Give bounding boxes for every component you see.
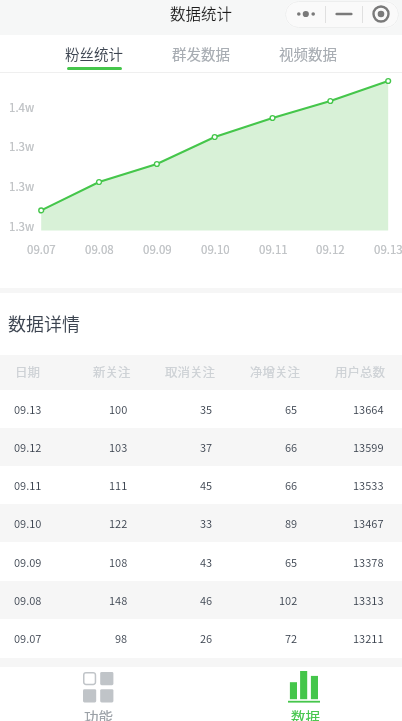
staticText: 09.11 (259, 241, 288, 258)
button[interactable]: More options (285, 1, 325, 28)
staticText: 33 (200, 515, 213, 531)
button[interactable]: Minimize (326, 1, 362, 28)
button[interactable]: 数据 (204, 667, 402, 721)
staticText: 100 (109, 401, 128, 417)
staticText: 09.08 (14, 592, 42, 608)
staticText: 新关注 (93, 362, 131, 380)
staticText: 66 (285, 477, 298, 493)
staticText: 89 (285, 515, 298, 531)
staticText: 122 (109, 515, 128, 531)
staticText: 13313 (353, 592, 384, 608)
staticText: 粉丝统计 (65, 43, 123, 64)
button[interactable]: 群发数据 (147, 35, 254, 73)
staticText: 09.07 (27, 241, 56, 258)
staticText: 净增关注 (250, 362, 301, 380)
staticText: 65 (285, 401, 298, 417)
staticText: 09.12 (316, 241, 345, 258)
staticText: 数据 (291, 706, 320, 721)
staticText: 103 (109, 439, 128, 455)
staticText: 取消关注 (165, 362, 216, 380)
button[interactable]: 粉丝统计 (41, 35, 147, 73)
staticText: 65 (285, 554, 298, 570)
staticText: 98 (115, 630, 128, 646)
staticText: 1.3w (9, 178, 35, 195)
staticText: 13467 (353, 515, 384, 531)
staticText: 视频数据 (279, 43, 337, 64)
staticText: 日期 (15, 362, 41, 380)
button[interactable]: Close (363, 1, 399, 28)
staticText: 13378 (353, 554, 384, 570)
staticText: 1.3w (9, 218, 35, 235)
staticText: 09.07 (14, 630, 42, 646)
staticText: 功能 (84, 706, 113, 721)
staticText: 102 (279, 592, 298, 608)
staticText: 13211 (353, 630, 384, 646)
staticText: 26 (200, 630, 213, 646)
staticText: 群发数据 (172, 43, 230, 64)
staticText: 108 (109, 554, 128, 570)
staticText: 66 (285, 439, 298, 455)
staticText: 用户总数 (335, 362, 386, 380)
staticText: 数据详情 (8, 310, 80, 336)
staticText: 09.09 (14, 554, 42, 570)
staticText: 45 (200, 477, 213, 493)
staticText: 111 (109, 477, 128, 493)
staticText: 09.13 (374, 241, 402, 258)
staticText: 13664 (353, 401, 384, 417)
staticText: 46 (200, 592, 213, 608)
staticText: 09.10 (14, 515, 42, 531)
staticText: 09.12 (14, 439, 42, 455)
staticText: 72 (285, 630, 298, 646)
staticText: 09.10 (201, 241, 230, 258)
staticText: 37 (200, 439, 213, 455)
staticText: 35 (200, 401, 213, 417)
staticText: 09.09 (143, 241, 172, 258)
staticText: 13599 (353, 439, 384, 455)
staticText: 09.13 (14, 401, 42, 417)
button[interactable]: 视频数据 (254, 35, 361, 73)
staticText: 09.11 (14, 477, 42, 493)
staticText: 148 (109, 592, 128, 608)
staticText: 数据统计 (170, 2, 233, 24)
staticText: 09.08 (85, 241, 114, 258)
staticText: 1.4w (9, 99, 35, 116)
staticText: 43 (200, 554, 213, 570)
staticText: 1.3w (9, 138, 35, 155)
staticText: 13533 (353, 477, 384, 493)
button[interactable]: 功能 (0, 667, 197, 721)
